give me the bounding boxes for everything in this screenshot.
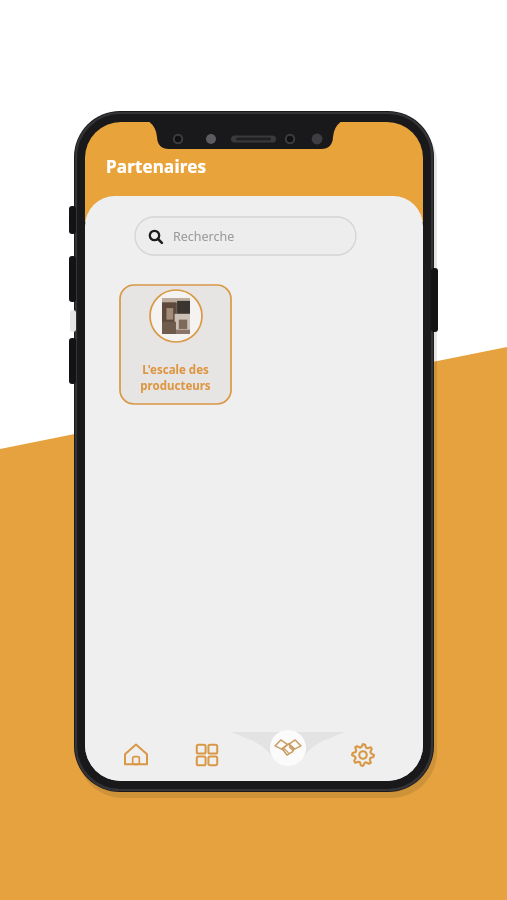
staticText: L'escale des producteurs	[120, 362, 231, 393]
button[interactable]: Categories	[184, 733, 230, 779]
button[interactable]: Settings	[340, 733, 386, 779]
button[interactable]: Recherche	[135, 217, 356, 255]
button[interactable]: Partners	[265, 726, 313, 774]
staticText: Partenaires	[106, 155, 207, 178]
button[interactable]: L'escale des producteurs	[120, 285, 231, 404]
button[interactable]: Home	[113, 733, 159, 779]
staticText: Recherche	[173, 228, 235, 245]
